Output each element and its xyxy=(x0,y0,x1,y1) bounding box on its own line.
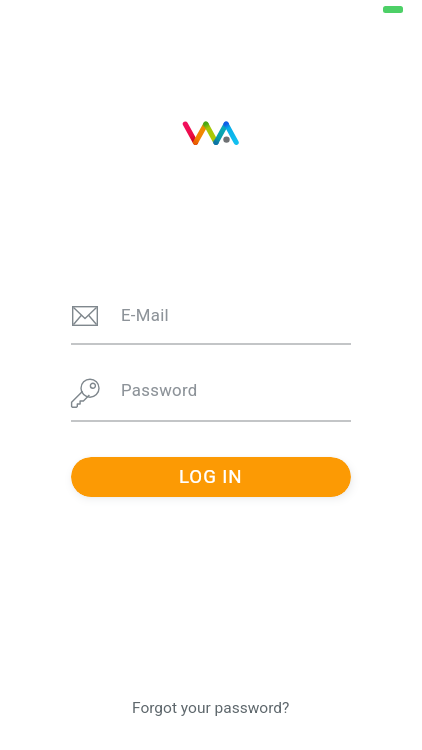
staticText: Forgot your password? xyxy=(132,699,290,717)
button[interactable]: LOG IN xyxy=(71,457,351,497)
staticText: E-Mail xyxy=(121,305,169,325)
button[interactable]: Password xyxy=(71,375,351,420)
other: Email xyxy=(72,306,98,326)
button[interactable]: Forgot your password? xyxy=(122,694,300,722)
other: Password xyxy=(71,378,101,409)
staticText: LOG IN xyxy=(179,466,243,488)
button[interactable]: Email xyxy=(71,300,351,344)
staticText: Password xyxy=(121,380,198,400)
